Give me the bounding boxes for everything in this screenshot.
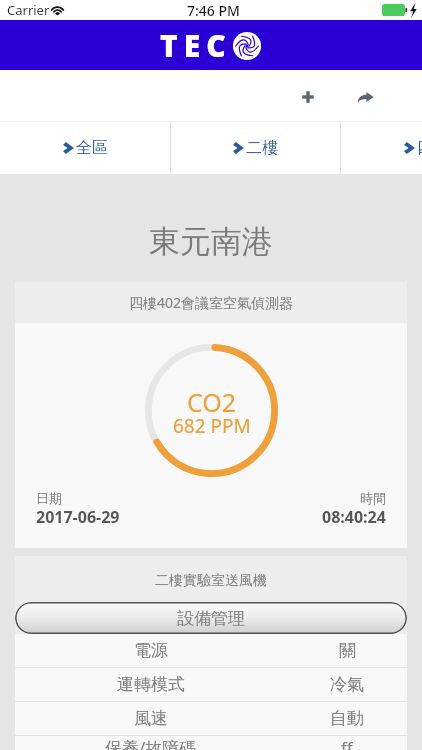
- staticText: 二樓實驗室送風機: [15, 572, 407, 590]
- staticText: 四樓: [417, 138, 422, 158]
- staticText: 四樓402會議室空氣偵測器: [129, 293, 294, 312]
- staticText: Carrier: [7, 1, 50, 19]
- staticText: TEC: [160, 25, 232, 66]
- staticText: 7:46 PM: [187, 1, 240, 20]
- staticText: 日期: [36, 490, 62, 506]
- button[interactable]: 電源: [15, 634, 407, 667]
- staticText: CO2: [187, 385, 237, 419]
- staticText: 保養/故障碼: [105, 736, 197, 750]
- staticText: 關: [339, 640, 356, 661]
- staticText: 時間: [360, 490, 386, 506]
- button[interactable]: 全區: [0, 122, 170, 174]
- staticText: ff: [341, 736, 353, 750]
- button[interactable]: 設備管理: [15, 602, 407, 634]
- staticText: 自動: [330, 708, 364, 729]
- staticText: 東元南港: [0, 222, 422, 261]
- staticText: 運轉模式: [117, 674, 185, 695]
- staticText: 2017-06-29: [36, 506, 120, 528]
- staticText: 設備管理: [177, 608, 245, 629]
- staticText: 電源: [134, 640, 168, 661]
- button[interactable]: 四樓: [341, 122, 422, 174]
- staticText: 冷氣: [330, 674, 364, 695]
- staticText: 08:40:24: [322, 506, 386, 528]
- button[interactable]: 風速: [15, 702, 407, 735]
- staticText: 風速: [134, 708, 168, 729]
- staticText: 二樓: [246, 138, 278, 158]
- button[interactable]: 運轉模式: [15, 668, 407, 701]
- staticText: 全區: [76, 138, 108, 158]
- staticText: 682 PPM: [173, 413, 251, 439]
- button[interactable]: Share: [342, 74, 387, 119]
- button[interactable]: Add: [285, 74, 330, 119]
- button[interactable]: 二樓: [171, 122, 340, 174]
- button[interactable]: 保養/故障碼: [15, 736, 407, 750]
